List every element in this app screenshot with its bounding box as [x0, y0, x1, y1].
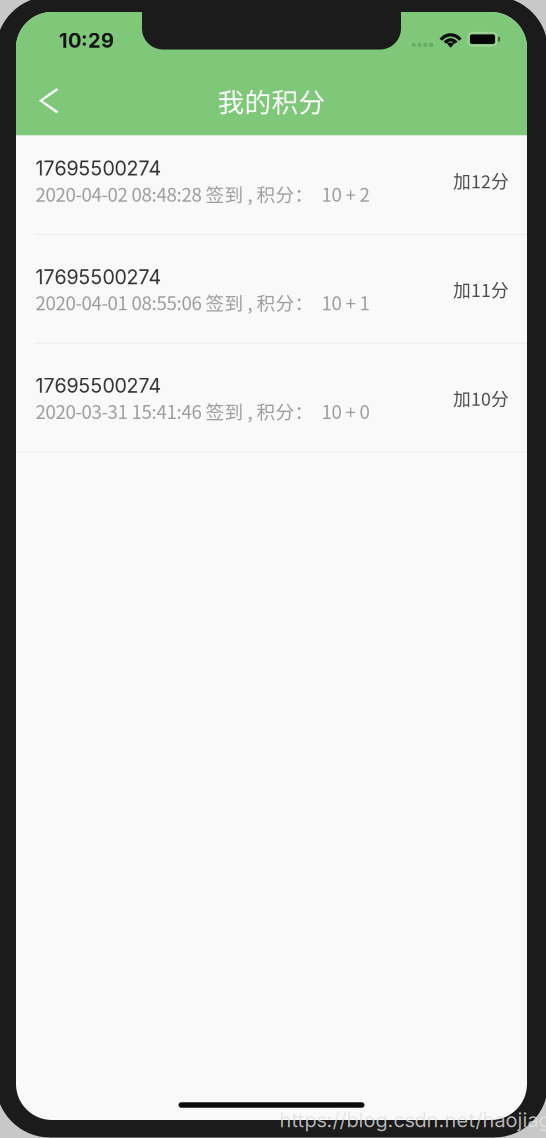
- staticText: 我的积分: [217, 81, 325, 120]
- button[interactable]: 17695500274: [16, 244, 527, 353]
- button[interactable]: Back: [26, 77, 74, 125]
- staticText: 2020-04-02 08:48:28 签到 , 积分： 10 + 2: [35, 180, 369, 207]
- button[interactable]: 17695500274: [16, 353, 527, 462]
- staticText: 17695500274: [35, 374, 161, 397]
- staticText: 17695500274: [35, 265, 161, 289]
- staticText: 2020-03-31 15:41:46 签到 , 积分： 10 + 0: [35, 397, 369, 424]
- staticText: 加10分: [453, 385, 509, 411]
- button[interactable]: 17695500274: [16, 135, 527, 244]
- staticText: 加12分: [453, 168, 509, 193]
- staticText: 10:29: [59, 28, 114, 53]
- staticText: 加11分: [453, 276, 509, 302]
- staticText: 2020-04-01 08:55:06 签到 , 积分： 10 + 1: [35, 289, 369, 316]
- staticText: https://blog.csdn.net/haojiagou: [279, 1108, 546, 1132]
- staticText: 17695500274: [35, 156, 161, 180]
